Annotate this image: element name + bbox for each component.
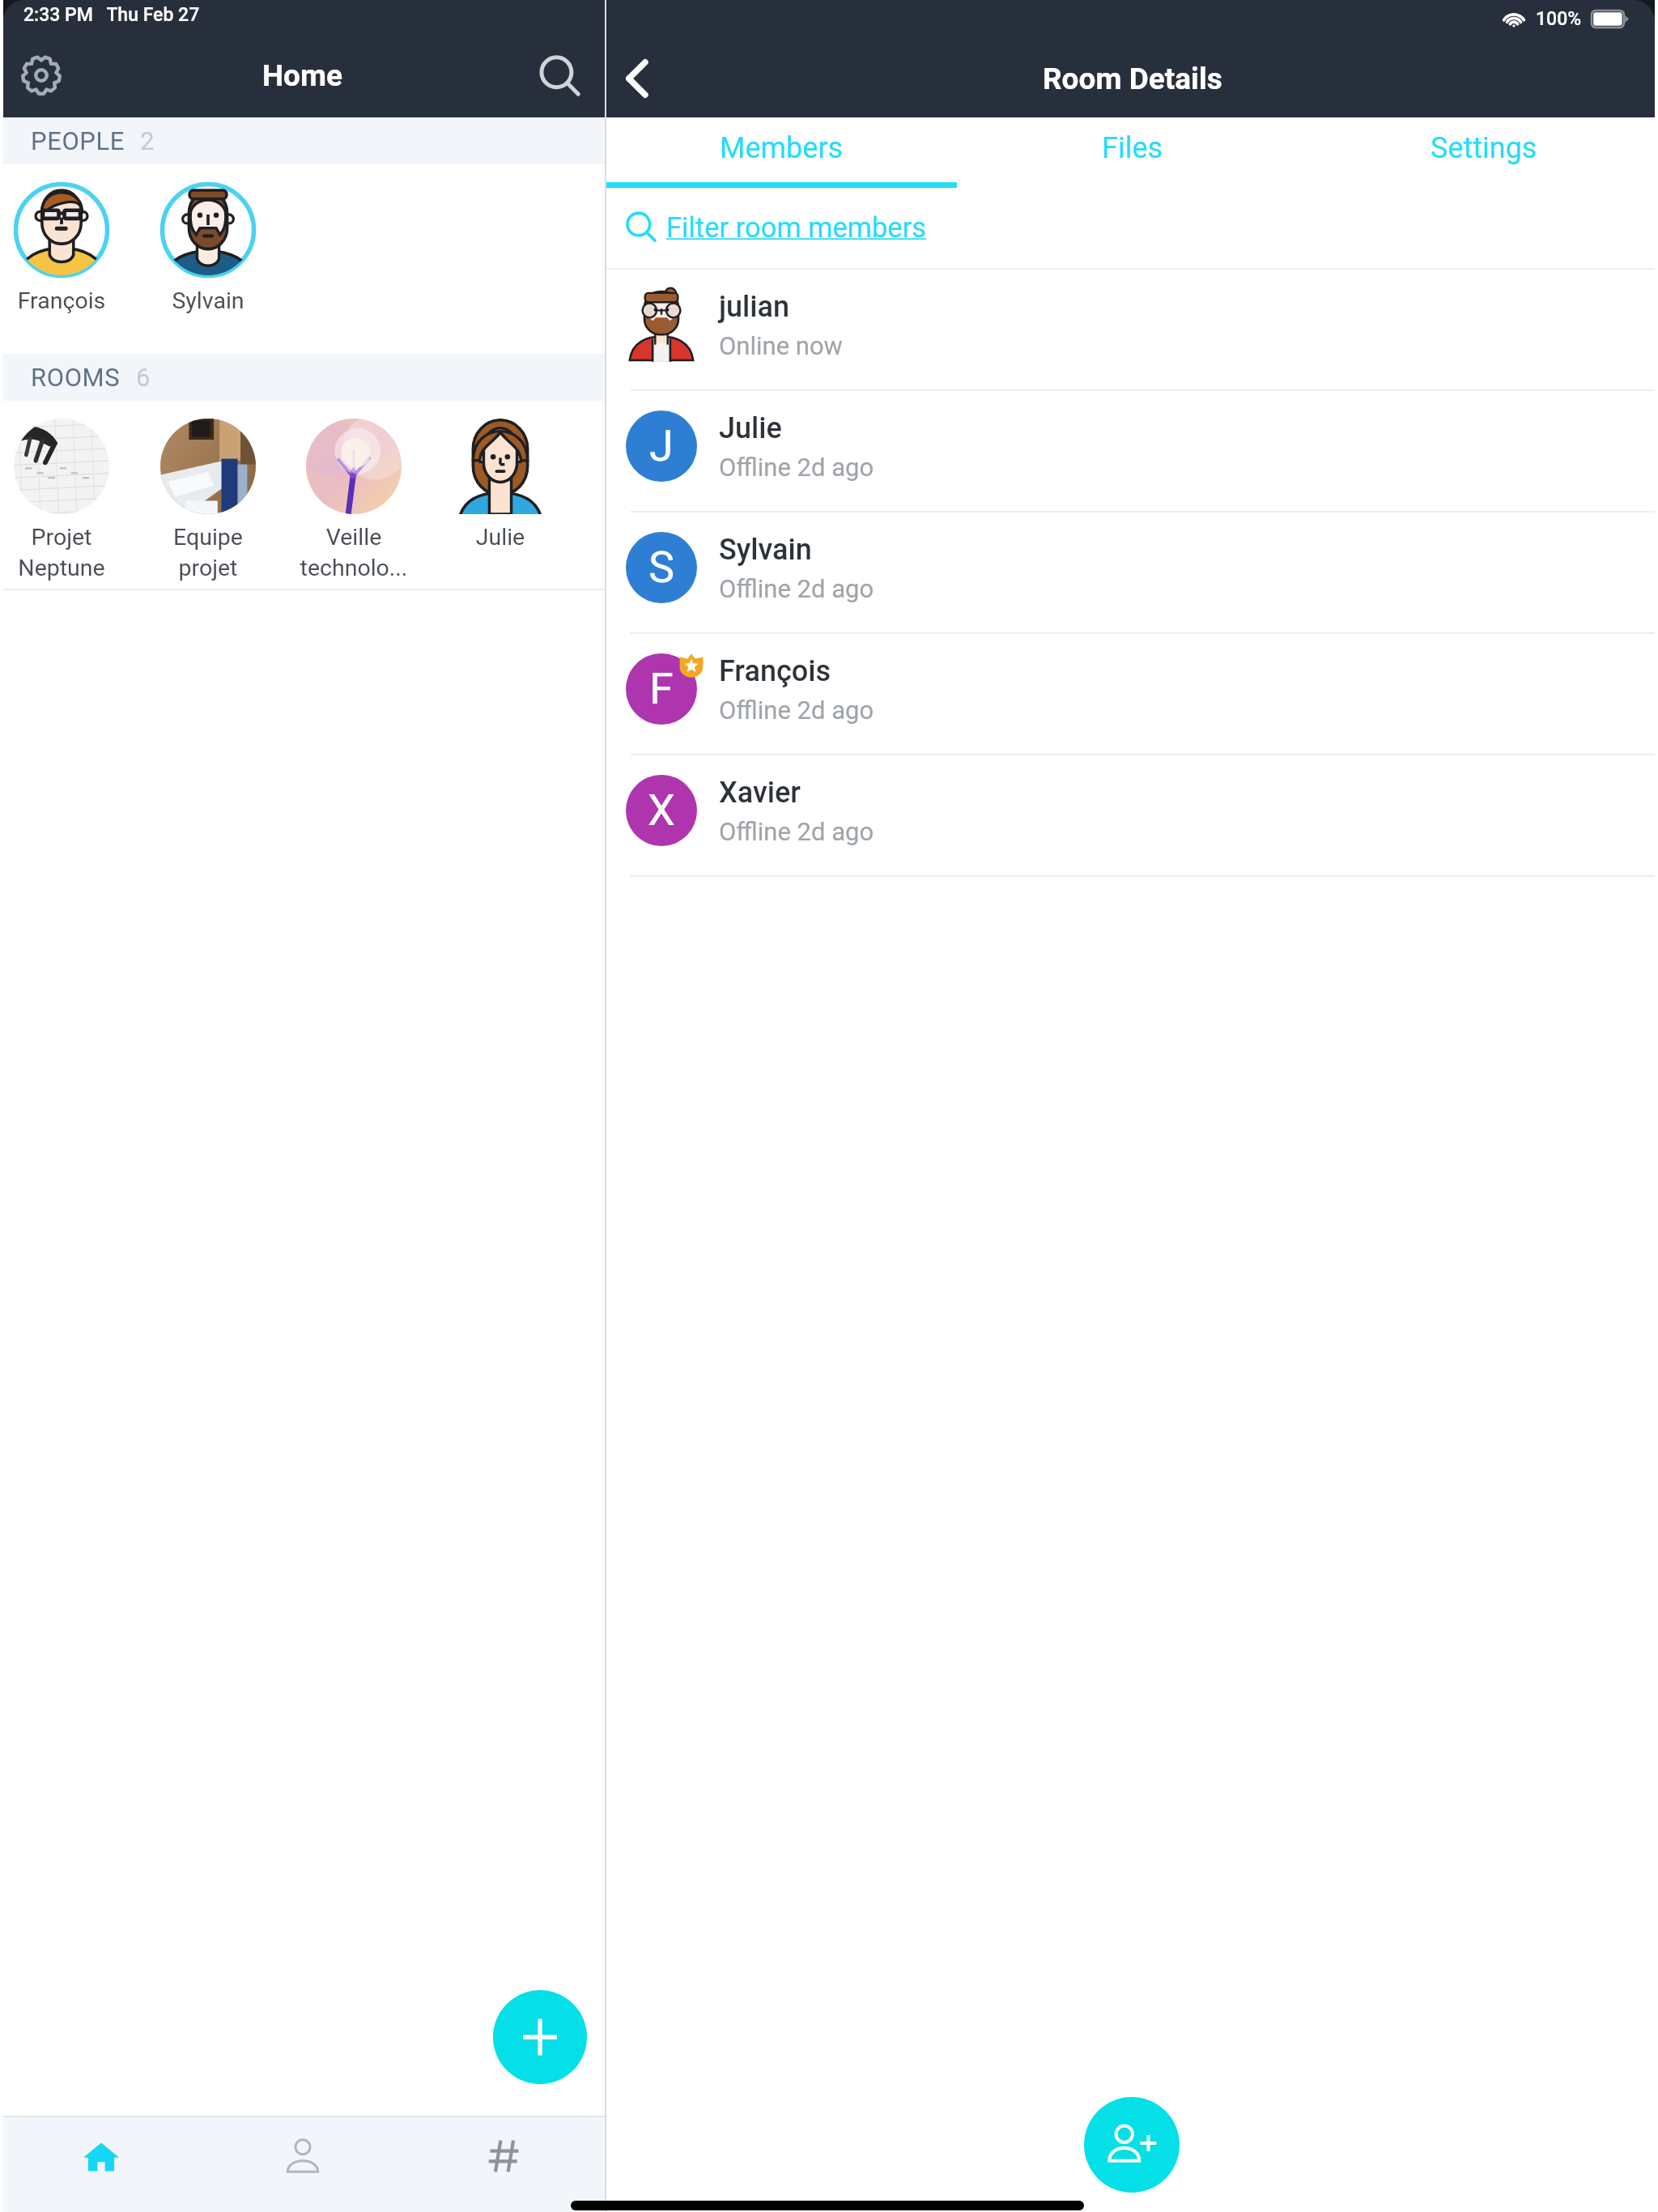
staticText: Offline 2d ago — [719, 696, 874, 725]
staticText: julian — [719, 290, 789, 324]
staticText: Room Details — [1043, 62, 1222, 96]
button[interactable]: Settings — [9, 43, 74, 108]
staticText: 6 — [136, 363, 151, 392]
button[interactable]: X — [606, 755, 1658, 877]
staticText: François — [1, 287, 122, 314]
button[interactable]: Julie — [440, 401, 561, 589]
staticText: S — [648, 542, 675, 593]
button[interactable]: J — [606, 391, 1658, 513]
button[interactable]: Add — [493, 1990, 587, 2084]
staticText: Sylvain — [719, 533, 812, 567]
staticText: Online now — [719, 331, 843, 360]
button[interactable]: julian — [606, 270, 1658, 391]
button[interactable]: Veille technolo... — [293, 401, 414, 589]
staticText: Offline 2d ago — [719, 817, 874, 846]
staticText: Veille technolo... — [293, 524, 414, 581]
button[interactable]: S — [606, 513, 1658, 634]
staticText: Equipe projet — [147, 524, 269, 581]
button[interactable]: François — [1, 164, 122, 354]
staticText: Files — [1102, 131, 1163, 165]
staticText: ROOMS — [31, 363, 121, 392]
button[interactable]: F — [606, 634, 1658, 755]
button[interactable]: Sylvain — [147, 164, 269, 354]
staticText: Julie — [719, 411, 782, 445]
staticText: Projet Neptune — [1, 524, 122, 581]
button[interactable]: Rooms — [403, 2117, 605, 2212]
staticText: Julie — [440, 524, 561, 551]
button[interactable]: People — [202, 2117, 403, 2212]
staticText: 100% — [1536, 8, 1582, 30]
staticText: X — [648, 785, 675, 836]
staticText: F — [649, 663, 674, 714]
staticText: Members — [720, 131, 844, 165]
staticText: Offline 2d ago — [719, 453, 874, 482]
button[interactable]: Back — [606, 47, 670, 110]
staticText: 2:33 PM Thu Feb 27 — [23, 4, 200, 26]
staticText: François — [719, 654, 831, 688]
button[interactable]: Members — [606, 117, 957, 188]
button[interactable]: Settings — [1308, 117, 1658, 188]
staticText: J — [649, 420, 674, 471]
button[interactable]: Equipe projet — [147, 401, 269, 589]
button[interactable]: Home — [0, 2117, 202, 2212]
button[interactable]: Add member — [1084, 2097, 1180, 2193]
staticText: Home — [0, 58, 605, 93]
staticText: Offline 2d ago — [719, 574, 874, 603]
button[interactable]: Filter room members — [606, 188, 1658, 268]
staticText: PEOPLE — [31, 126, 125, 155]
button[interactable]: Files — [957, 117, 1307, 188]
staticText: Filter room members — [666, 211, 927, 244]
button[interactable]: Projet Neptune — [1, 401, 122, 589]
staticText: 2 — [140, 126, 155, 155]
staticText: Settings — [1431, 131, 1537, 165]
staticText: Sylvain — [147, 287, 269, 314]
staticText: Xavier — [719, 776, 801, 810]
button[interactable]: Search — [538, 55, 590, 107]
